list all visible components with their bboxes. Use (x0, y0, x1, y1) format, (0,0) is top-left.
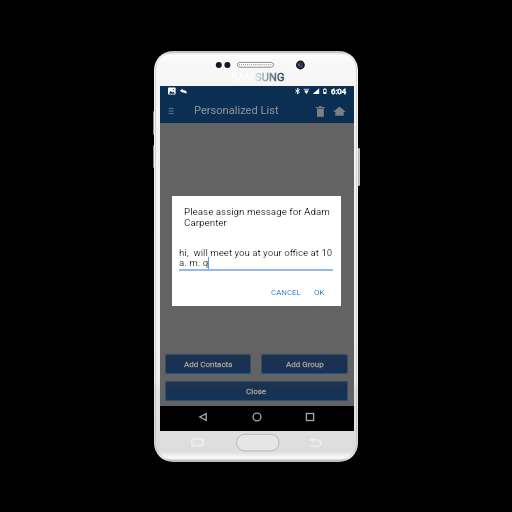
button[interactable]: Close (165, 381, 348, 401)
staticText: OK (314, 288, 325, 297)
staticText: Please assign message for Adam Carpenter (184, 206, 332, 228)
button[interactable]: CANCEL (269, 285, 303, 300)
button[interactable]: Back (194, 408, 212, 426)
staticText: Personalized List (194, 104, 279, 117)
staticText: CANCEL (271, 288, 301, 297)
button[interactable]: OK (311, 285, 328, 300)
button[interactable]: Open navigation menu (167, 99, 177, 123)
staticText: Close (246, 387, 267, 396)
staticText: SAMSUNG (231, 71, 285, 84)
staticText: 6:04 (331, 87, 347, 96)
staticText: Add Contacts (184, 360, 233, 369)
button[interactable]: Recent apps (301, 408, 319, 426)
button[interactable]: Home (330, 101, 348, 121)
staticText: Add Group (286, 360, 324, 369)
button[interactable]: Home (248, 408, 266, 426)
button[interactable]: Delete (312, 101, 328, 121)
staticText: hi, will meet you at your office at 10 a… (179, 247, 335, 269)
button[interactable]: Add Group (261, 354, 348, 374)
button[interactable]: Add Contacts (165, 354, 251, 374)
